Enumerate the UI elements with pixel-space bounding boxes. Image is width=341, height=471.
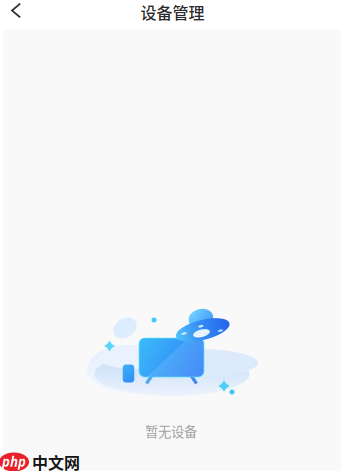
staticText: 中文网 [32, 450, 80, 471]
staticText: 设备管理 [140, 0, 204, 24]
staticText: php [2, 452, 26, 471]
staticText: 暂无设备 [145, 421, 197, 441]
button[interactable]: Back [0, 0, 34, 30]
